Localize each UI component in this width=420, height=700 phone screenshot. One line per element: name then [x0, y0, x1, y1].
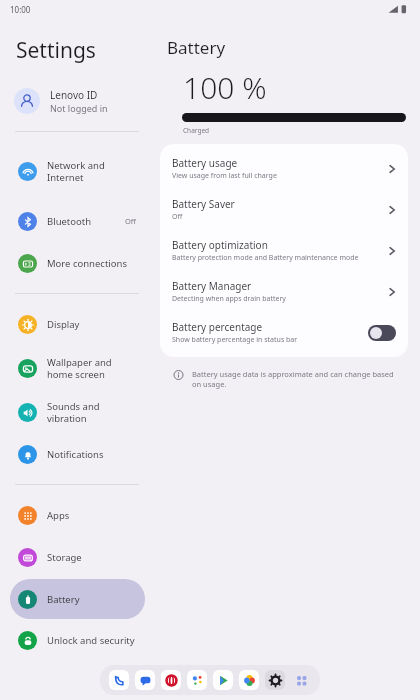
- staticText: Not logged in: [50, 102, 108, 114]
- button[interactable]: Battery optimization: [160, 230, 408, 271]
- staticText: Battery percentage: [172, 320, 263, 334]
- button[interactable]: App 1: [135, 670, 155, 690]
- staticText: Detecting when apps drain battery: [172, 294, 286, 304]
- staticText: Charged: [183, 126, 210, 135]
- button[interactable]: App 2: [161, 670, 181, 690]
- staticText: Settings: [16, 36, 96, 65]
- staticText: Wallpaper and home screen: [47, 356, 137, 381]
- staticText: Battery: [167, 36, 226, 59]
- button[interactable]: Battery usage: [160, 148, 408, 189]
- button[interactable]: App 6: [265, 670, 285, 690]
- button[interactable]: Battery Saver: [160, 189, 408, 230]
- button[interactable]: Apps: [10, 495, 145, 535]
- button[interactable]: App 5: [239, 670, 259, 690]
- button[interactable]: Lenovo ID: [0, 79, 155, 123]
- button[interactable]: Bluetooth: [10, 201, 145, 241]
- staticText: Lenovo ID: [50, 88, 98, 102]
- staticText: Apps: [47, 509, 137, 522]
- button[interactable]: Storage: [10, 537, 145, 577]
- staticText: Bluetooth: [47, 215, 125, 228]
- button[interactable]: App 0: [109, 670, 129, 690]
- staticText: Off: [125, 216, 137, 226]
- button[interactable]: Network and Internet: [10, 143, 145, 199]
- button[interactable]: Display: [10, 304, 145, 344]
- staticText: Battery Saver: [172, 197, 235, 211]
- staticText: Battery Manager: [172, 279, 252, 293]
- button[interactable]: Unlock and security: [10, 621, 145, 659]
- button[interactable]: Sounds and vibration: [10, 392, 145, 432]
- button[interactable]: App 4: [213, 670, 233, 690]
- staticText: Unlock and security: [47, 634, 137, 647]
- staticText: More connections: [47, 257, 137, 270]
- staticText: Battery usage: [172, 156, 238, 170]
- staticText: Network and Internet: [47, 159, 137, 184]
- staticText: 100 %: [183, 67, 267, 108]
- button[interactable]: Battery percentage toggle: [368, 325, 396, 341]
- staticText: 10:00: [10, 4, 31, 15]
- button[interactable]: Battery percentage: [160, 312, 408, 353]
- staticText: Battery optimization: [172, 238, 268, 252]
- button[interactable]: App 7: [291, 670, 311, 690]
- staticText: Storage: [47, 551, 137, 564]
- staticText: Sounds and vibration: [47, 400, 137, 425]
- staticText: Off: [172, 212, 183, 222]
- staticText: Show battery percentage in status bar: [172, 335, 298, 345]
- button[interactable]: More connections: [10, 243, 145, 283]
- button[interactable]: Wallpaper and home screen: [10, 346, 145, 390]
- button[interactable]: Battery Manager: [160, 271, 408, 312]
- staticText: Battery usage data is approximate and ca…: [192, 369, 398, 389]
- staticText: Battery: [47, 593, 137, 606]
- button[interactable]: Battery: [10, 579, 145, 619]
- button[interactable]: Notifications: [10, 434, 145, 474]
- staticText: Notifications: [47, 448, 137, 461]
- button[interactable]: App 3: [187, 670, 207, 690]
- staticText: Display: [47, 318, 137, 331]
- staticText: View usage from last full charge: [172, 171, 277, 181]
- staticText: Battery protection mode and Battery main…: [172, 253, 359, 263]
